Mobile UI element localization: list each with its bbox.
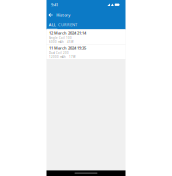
staticText: ALL [49,22,56,27]
staticText: CURRENT [58,22,77,27]
staticText: 9:41 [51,2,58,7]
staticText: 12000 mAh 17W [49,55,75,59]
staticText: Single Coil 100 [49,36,72,40]
staticText: History [56,12,70,18]
button[interactable]: CURRENT [57,20,77,29]
button[interactable]: 12 March 2024 21:14 [46,29,125,44]
button[interactable]: Back [47,9,55,20]
button[interactable]: 11 March 2024 19:35 [46,44,125,59]
staticText: 12 March 2024 21:14 [49,30,86,36]
staticText: Dual Coil 200 [49,51,69,55]
staticText: 11 March 2024 19:35 [49,45,86,51]
staticText: 6000 mAh 45W [49,40,73,44]
button[interactable]: ALL [47,20,57,29]
